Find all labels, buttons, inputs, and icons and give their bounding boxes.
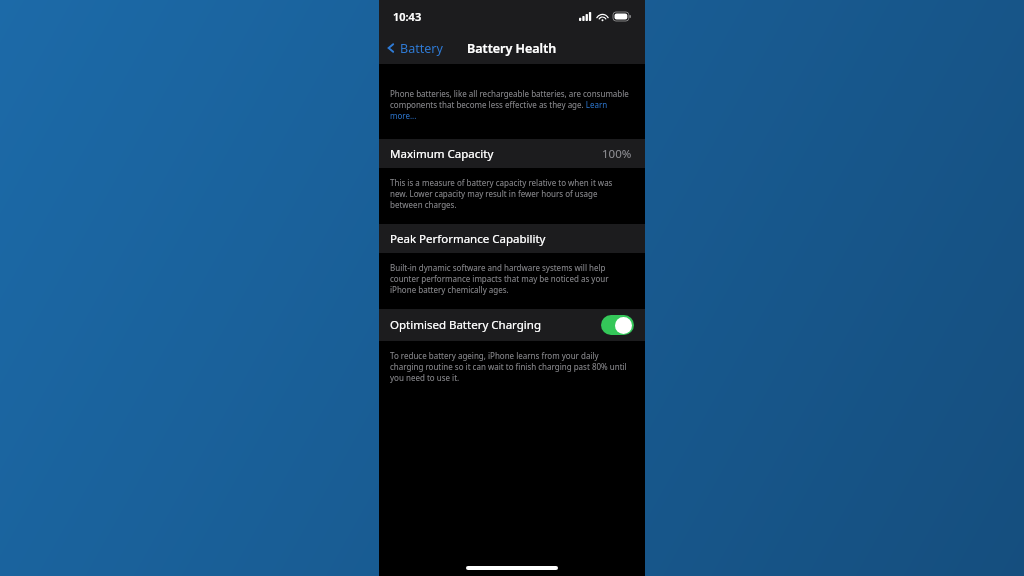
- button[interactable]: Optimised Battery Charging: [379, 309, 645, 341]
- button[interactable]: Phone batteries, like all rechargeable b…: [390, 88, 634, 121]
- button[interactable]: Battery: [379, 32, 451, 64]
- staticText: Built-in dynamic software and hardware s…: [390, 262, 631, 295]
- staticText: Battery: [400, 40, 443, 57]
- button[interactable]: Optimised Battery Charging toggle, on: [601, 315, 634, 335]
- staticText: Battery Health: [467, 40, 557, 57]
- staticText: 100%: [602, 146, 632, 162]
- staticText: Peak Performance Capability: [390, 231, 546, 247]
- staticText: This is a measure of battery capacity re…: [390, 177, 631, 210]
- button[interactable]: Maximum Capacity: [379, 139, 645, 168]
- button[interactable]: Peak Performance Capability: [379, 224, 645, 253]
- staticText: 10:43: [393, 9, 422, 24]
- staticText: Optimised Battery Charging: [390, 317, 541, 333]
- staticText: To reduce battery ageing, iPhone learns …: [390, 350, 631, 383]
- staticText: Maximum Capacity: [390, 146, 494, 162]
